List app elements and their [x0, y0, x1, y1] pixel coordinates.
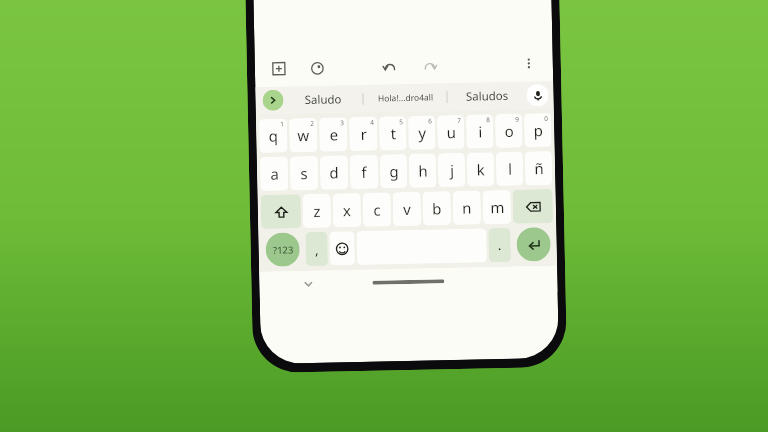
staticText: k	[476, 159, 485, 179]
button[interactable]: ?123	[265, 232, 300, 267]
staticText: a	[270, 164, 279, 184]
button[interactable]: s	[290, 156, 318, 190]
button[interactable]: t	[379, 116, 407, 151]
button[interactable]: ,	[305, 232, 328, 266]
button[interactable]: Shift	[260, 194, 301, 229]
button[interactable]: Add clipboard item	[267, 56, 291, 81]
button[interactable]: y	[408, 115, 436, 150]
staticText: j	[450, 160, 454, 180]
staticText: 4	[370, 118, 374, 127]
staticText: v	[403, 199, 411, 219]
button[interactable]: Hola!...dro4all	[363, 83, 447, 112]
button[interactable]: h	[409, 153, 436, 188]
staticText: ?123	[273, 243, 294, 257]
button[interactable]: Themes	[305, 56, 329, 80]
staticText: Saludos	[465, 88, 509, 105]
button[interactable]: x	[332, 193, 361, 228]
staticText: c	[373, 199, 381, 220]
staticText: r	[360, 124, 367, 144]
staticText: 6	[428, 116, 432, 125]
staticText: q	[268, 126, 278, 146]
staticText: ñ	[534, 158, 544, 178]
staticText: 9	[515, 115, 519, 124]
button[interactable]: m	[482, 190, 511, 224]
button[interactable]: Expand suggestions	[262, 90, 284, 111]
button[interactable]: e	[319, 117, 348, 152]
button[interactable]: k	[467, 152, 494, 187]
staticText: 5	[399, 117, 403, 126]
staticText: .	[497, 235, 502, 254]
staticText: z	[313, 201, 321, 221]
staticText: Hola!...dro4all	[377, 91, 434, 105]
button[interactable]: Redo	[417, 52, 443, 79]
staticText: x	[343, 200, 351, 220]
staticText: h	[418, 160, 428, 181]
button[interactable]: c	[362, 192, 391, 227]
staticText: 0	[544, 114, 548, 123]
staticText: p	[533, 120, 543, 140]
button[interactable]: r	[349, 117, 378, 151]
button[interactable]: Enter	[516, 227, 551, 262]
staticText: 2	[310, 119, 314, 128]
button[interactable]: z	[302, 194, 331, 228]
button[interactable]: Space	[356, 228, 487, 265]
staticText: t	[390, 123, 396, 143]
button[interactable]: n	[452, 190, 481, 225]
button[interactable]: b	[422, 191, 451, 226]
button[interactable]: ñ	[525, 151, 552, 185]
staticText: 8	[486, 115, 490, 124]
staticText: Saludo	[304, 91, 342, 108]
button[interactable]: Undo	[377, 53, 403, 79]
staticText: 7	[457, 116, 461, 125]
staticText: f	[361, 162, 367, 182]
staticText: w	[297, 125, 309, 145]
button[interactable]: u	[437, 115, 465, 149]
button[interactable]: .	[488, 228, 511, 262]
button[interactable]: j	[438, 153, 465, 187]
button[interactable]: Saludo	[283, 85, 363, 113]
button[interactable]: v	[392, 192, 421, 226]
staticText: s	[300, 163, 308, 183]
button[interactable]: o	[495, 114, 523, 148]
staticText: m	[490, 197, 505, 217]
button[interactable]: i	[466, 114, 494, 149]
button[interactable]: g	[380, 154, 407, 189]
staticText: l	[508, 159, 512, 179]
staticText: 1	[280, 119, 284, 129]
button[interactable]: Backspace	[512, 189, 553, 224]
staticText: u	[446, 122, 456, 142]
staticText: 3	[340, 118, 344, 127]
staticText: g	[389, 161, 399, 181]
button[interactable]: q	[259, 118, 288, 153]
staticText: y	[418, 123, 426, 143]
staticText: o	[504, 121, 514, 141]
staticText: i	[478, 121, 482, 141]
button[interactable]: f	[350, 155, 378, 189]
button[interactable]: w	[289, 118, 318, 152]
button[interactable]: Hide keyboard	[299, 275, 318, 293]
staticText: b	[432, 198, 442, 218]
staticText: d	[329, 162, 339, 183]
button[interactable]: l	[496, 152, 523, 186]
button[interactable]: Saludos	[447, 81, 527, 110]
button[interactable]: d	[320, 155, 348, 190]
staticText: ,	[314, 240, 319, 259]
button[interactable]: Emoji	[329, 231, 355, 266]
button[interactable]: a	[260, 156, 288, 191]
staticText: e	[329, 124, 338, 145]
staticText: n	[462, 198, 472, 218]
button[interactable]: Voice input	[526, 84, 549, 106]
button[interactable]: p	[524, 113, 552, 148]
button[interactable]: More options	[517, 51, 541, 76]
